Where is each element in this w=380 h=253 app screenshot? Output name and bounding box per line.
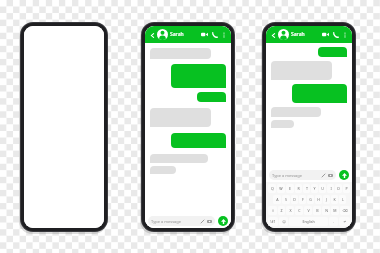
staticText: W [279, 186, 283, 191]
button[interactable]: W [277, 184, 285, 193]
button[interactable] [171, 64, 226, 88]
staticText: S [285, 197, 287, 202]
staticText: ☺ [282, 220, 286, 224]
button[interactable]: I [327, 184, 334, 193]
button[interactable]: X [286, 206, 294, 215]
button[interactable]: S [282, 195, 290, 204]
button[interactable]: Back [269, 31, 277, 39]
staticText: K [333, 197, 336, 202]
button[interactable]: O [335, 184, 342, 193]
button[interactable]: R [295, 184, 302, 193]
button[interactable]: Y [311, 184, 318, 193]
button[interactable]: ↵ [339, 217, 350, 226]
staticText: N [325, 208, 328, 213]
button[interactable]: Video call [321, 30, 330, 39]
staticText: X [289, 208, 292, 213]
button[interactable] [197, 92, 226, 102]
button[interactable]: Back [148, 31, 156, 39]
staticText: Type a message [151, 219, 182, 224]
button[interactable]: A [273, 195, 281, 204]
button[interactable] [271, 107, 321, 117]
staticText: ⇧ [271, 209, 275, 213]
staticText: Y [313, 186, 316, 191]
button[interactable]: E [286, 184, 294, 193]
button[interactable]: J [323, 195, 330, 204]
staticText: E [289, 186, 291, 191]
button[interactable]: N [322, 206, 330, 215]
staticText: F [302, 197, 304, 202]
staticText: . [333, 219, 334, 224]
button[interactable] [318, 47, 347, 57]
staticText: English [302, 219, 315, 224]
button[interactable]: H [315, 195, 322, 204]
button[interactable] [271, 120, 294, 128]
staticText: Sarah [170, 31, 184, 38]
staticText: B [316, 208, 319, 213]
staticText: U [321, 186, 324, 191]
staticText: Sarah [291, 31, 305, 38]
button[interactable]: Type a message [148, 216, 215, 226]
staticText: T [306, 186, 308, 191]
staticText: A [276, 197, 279, 202]
staticText: L [342, 197, 344, 202]
button[interactable]: Camera [207, 219, 212, 224]
button[interactable]: Call [331, 30, 340, 39]
button[interactable]: ⌫ [340, 206, 350, 215]
staticText: ↵ [343, 220, 347, 224]
staticText: Type a message [272, 173, 303, 178]
button[interactable]: K [331, 195, 338, 204]
button[interactable]: D [291, 195, 298, 204]
button[interactable]: T [303, 184, 310, 193]
button[interactable]: !#1 [268, 217, 278, 226]
button[interactable]: Send [339, 170, 349, 180]
button[interactable]: M [331, 206, 339, 215]
button[interactable] [150, 166, 176, 174]
button[interactable]: Call [210, 30, 219, 39]
button[interactable]: Send [218, 216, 228, 226]
button[interactable]: ⇧ [268, 206, 277, 215]
staticText: O [337, 186, 340, 191]
button[interactable]: ☺ [279, 217, 288, 226]
staticText: Z [280, 208, 283, 213]
button[interactable]: B [313, 206, 321, 215]
staticText: I [330, 186, 332, 191]
button[interactable] [292, 84, 347, 103]
button[interactable]: More options [220, 31, 228, 39]
staticText: Q [271, 186, 274, 191]
button[interactable]: Video call [200, 30, 209, 39]
staticText: P [345, 186, 348, 191]
button[interactable]: Z [278, 206, 285, 215]
staticText: C [298, 208, 301, 213]
button[interactable]: Q [268, 184, 276, 193]
button[interactable]: F [299, 195, 306, 204]
staticText: !#1 [270, 219, 276, 224]
button[interactable]: Camera [328, 173, 333, 178]
button[interactable]: P [343, 184, 350, 193]
button[interactable] [171, 133, 226, 148]
staticText: V [307, 208, 310, 213]
staticText: ⌫ [342, 209, 348, 213]
button[interactable]: Type a message [269, 170, 336, 180]
button[interactable]: English [289, 217, 328, 226]
button[interactable]: V [304, 206, 312, 215]
staticText: J [326, 197, 327, 202]
button[interactable] [150, 154, 208, 163]
staticText: G [309, 197, 312, 202]
button[interactable]: L [339, 195, 346, 204]
staticText: M [333, 208, 337, 213]
button[interactable]: C [295, 206, 303, 215]
button[interactable]: More options [341, 31, 349, 39]
button[interactable] [150, 48, 211, 59]
button[interactable]: G [307, 195, 314, 204]
staticText: H [317, 197, 320, 202]
staticText: D [293, 197, 296, 202]
button[interactable]: U [319, 184, 326, 193]
staticText: R [297, 186, 300, 191]
button[interactable]: Attach [321, 173, 326, 178]
button[interactable]: Attach [200, 219, 205, 224]
